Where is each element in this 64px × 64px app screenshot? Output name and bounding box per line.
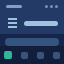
button[interactable]: Explore (16, 46, 32, 64)
button[interactable]: Menu (6, 17, 18, 29)
button[interactable]: Library (32, 46, 48, 64)
button[interactable]: Profile (48, 46, 64, 64)
button[interactable]: Home (0, 46, 16, 64)
button[interactable] (5, 38, 59, 46)
